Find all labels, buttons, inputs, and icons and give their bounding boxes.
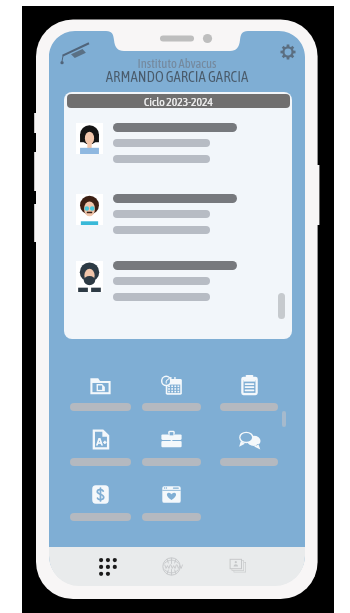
button[interactable] — [76, 123, 237, 163]
button[interactable]: Messages — [220, 428, 278, 466]
staticText: ARMANDO GARCIA GARCIA — [49, 68, 305, 85]
button[interactable]: Browser — [150, 547, 192, 585]
button[interactable]: Payments — [70, 483, 131, 521]
button[interactable]: Favourites — [142, 483, 201, 521]
button[interactable] — [76, 194, 237, 234]
staticText: Instituto Abvacus — [49, 56, 305, 70]
button[interactable]: Settings — [276, 40, 300, 64]
button[interactable] — [76, 261, 237, 301]
button[interactable]: Gallery — [217, 547, 259, 585]
button[interactable]: Tasks — [220, 374, 278, 411]
button[interactable]: Grades — [70, 428, 131, 466]
staticText: Ciclo 2023-2024 — [144, 95, 214, 108]
button[interactable]: Apps — [86, 547, 128, 585]
button[interactable]: Schedule — [142, 374, 201, 411]
button[interactable]: Work — [142, 428, 201, 466]
button[interactable]: Documents — [70, 374, 131, 411]
button[interactable]: Ciclo 2023-2024 — [67, 94, 290, 108]
